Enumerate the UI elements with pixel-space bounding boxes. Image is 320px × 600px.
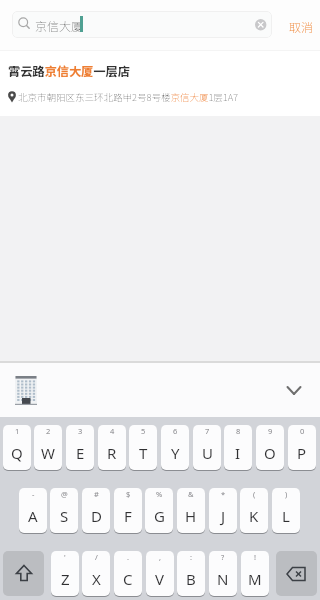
button[interactable]: - bbox=[19, 488, 47, 533]
button[interactable]: ? bbox=[209, 551, 237, 596]
button[interactable]: ' bbox=[51, 551, 79, 596]
staticText: 北京市朝阳区东三环北路甲2号8号楼京信大厦1层1A7 bbox=[18, 90, 239, 104]
staticText: D bbox=[91, 506, 102, 526]
button[interactable]: 3 bbox=[66, 425, 94, 470]
button[interactable]: & bbox=[177, 488, 205, 533]
staticText: T bbox=[139, 443, 148, 463]
staticText: * bbox=[221, 489, 226, 499]
staticText: , bbox=[159, 552, 162, 562]
button[interactable]: 6 bbox=[161, 425, 189, 470]
staticText: 9 bbox=[268, 426, 273, 436]
staticText: 2 bbox=[46, 426, 51, 436]
staticText: I bbox=[235, 443, 241, 463]
staticText: B bbox=[186, 569, 196, 589]
staticText: : bbox=[190, 552, 193, 562]
staticText: # bbox=[94, 489, 99, 499]
button[interactable] bbox=[15, 376, 37, 405]
button[interactable]: * bbox=[209, 488, 237, 533]
button[interactable]: ) bbox=[272, 488, 300, 533]
button[interactable]: 京信大厦 bbox=[12, 11, 272, 38]
staticText: G bbox=[154, 506, 165, 526]
staticText: H bbox=[185, 506, 197, 526]
button[interactable]: 8 bbox=[224, 425, 252, 470]
staticText: L bbox=[282, 506, 290, 526]
staticText: . bbox=[127, 552, 130, 562]
button[interactable]: : bbox=[177, 551, 205, 596]
button[interactable]: 2 bbox=[34, 425, 62, 470]
button[interactable]: / bbox=[82, 551, 110, 596]
button[interactable]: @ bbox=[50, 488, 78, 533]
staticText: ' bbox=[64, 552, 66, 562]
button[interactable]: 4 bbox=[98, 425, 126, 470]
staticText: 7 bbox=[205, 426, 210, 436]
button[interactable]: 0 bbox=[288, 425, 316, 470]
staticText: M bbox=[248, 569, 262, 589]
button[interactable] bbox=[255, 19, 267, 31]
button[interactable]: % bbox=[145, 488, 173, 533]
button[interactable]: $ bbox=[114, 488, 142, 533]
staticText: ? bbox=[221, 552, 225, 562]
staticText: ) bbox=[285, 489, 288, 499]
button[interactable] bbox=[276, 551, 317, 596]
staticText: % bbox=[156, 489, 163, 499]
button[interactable]: 7 bbox=[193, 425, 221, 470]
staticText: & bbox=[188, 489, 194, 499]
staticText: 3 bbox=[78, 426, 83, 436]
staticText: X bbox=[92, 569, 101, 589]
button[interactable]: . bbox=[114, 551, 142, 596]
staticText: - bbox=[32, 489, 35, 499]
staticText: @ bbox=[61, 489, 68, 499]
staticText: 京信大厦 bbox=[35, 17, 84, 34]
staticText: U bbox=[202, 443, 213, 463]
staticText: 1 bbox=[15, 426, 20, 436]
staticText: $ bbox=[126, 489, 131, 499]
staticText: 5 bbox=[141, 426, 146, 436]
staticText: F bbox=[124, 506, 132, 526]
staticText: A bbox=[28, 506, 38, 526]
button[interactable]: 9 bbox=[256, 425, 284, 470]
button[interactable]: 取消 bbox=[289, 18, 314, 35]
staticText: / bbox=[95, 552, 98, 562]
staticText: 8 bbox=[236, 426, 241, 436]
button[interactable]: , bbox=[146, 551, 174, 596]
staticText: Q bbox=[11, 443, 23, 463]
staticText: K bbox=[249, 506, 259, 526]
staticText: ! bbox=[254, 552, 257, 562]
staticText: Y bbox=[171, 443, 180, 463]
staticText: Z bbox=[61, 569, 70, 589]
button[interactable]: ! bbox=[241, 551, 269, 596]
button[interactable] bbox=[3, 551, 44, 596]
staticText: P bbox=[297, 443, 307, 463]
staticText: 6 bbox=[173, 426, 178, 436]
button[interactable]: # bbox=[82, 488, 110, 533]
button[interactable]: ( bbox=[240, 488, 268, 533]
staticText: N bbox=[217, 569, 229, 589]
staticText: J bbox=[221, 506, 226, 526]
staticText: W bbox=[41, 443, 55, 463]
button[interactable]: 霄云路京信大厦一层店 bbox=[0, 50, 320, 116]
staticText: 霄云路京信大厦一层店 bbox=[8, 62, 130, 80]
staticText: C bbox=[123, 569, 133, 589]
staticText: ( bbox=[253, 489, 256, 499]
staticText: R bbox=[107, 443, 117, 463]
button[interactable]: 1 bbox=[3, 425, 31, 470]
staticText: 0 bbox=[300, 426, 305, 436]
button[interactable] bbox=[284, 383, 304, 399]
staticText: S bbox=[60, 506, 69, 526]
staticText: 4 bbox=[110, 426, 115, 436]
button[interactable]: 5 bbox=[129, 425, 157, 470]
staticText: V bbox=[155, 569, 165, 589]
staticText: E bbox=[76, 443, 85, 463]
staticText: O bbox=[264, 443, 276, 463]
